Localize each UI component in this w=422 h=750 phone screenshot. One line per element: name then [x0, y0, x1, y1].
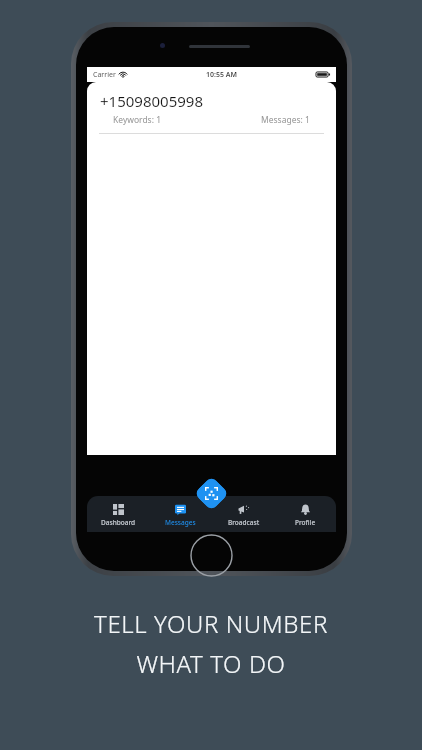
- button[interactable]: Messages: [149, 496, 211, 532]
- button[interactable]: Profile: [274, 496, 336, 532]
- button[interactable]: Messages: 1: [261, 114, 310, 126]
- staticText: +15098005998: [100, 91, 203, 111]
- staticText: Broadcast: [228, 518, 260, 527]
- staticText: 10:55 AM: [206, 70, 237, 80]
- button[interactable]: Dashboard: [87, 496, 149, 532]
- staticText: Keywords: 1: [113, 114, 162, 126]
- button[interactable]: Keywords: 1: [113, 114, 162, 126]
- staticText: Messages: 1: [261, 114, 310, 126]
- staticText: Carrier: [93, 70, 116, 80]
- staticText: TELL YOUR NUMBER: [94, 607, 328, 640]
- staticText: Profile: [295, 518, 316, 527]
- button[interactable]: Home: [190, 534, 233, 577]
- staticText: WHAT TO DO: [136, 647, 286, 680]
- staticText: Dashboard: [101, 518, 136, 527]
- button[interactable]: Broadcast: [213, 496, 274, 532]
- staticText: Messages: [165, 518, 196, 527]
- button[interactable]: Scan QR code: [195, 477, 228, 510]
